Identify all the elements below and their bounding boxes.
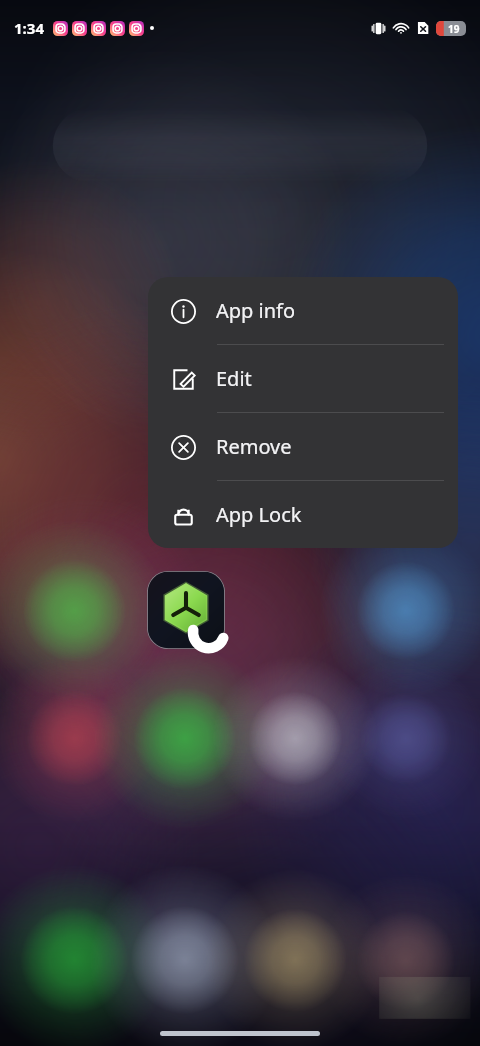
button[interactable]: App icon — [147, 571, 225, 649]
staticText: Edit — [216, 365, 252, 392]
staticText: App Lock — [216, 501, 302, 528]
staticText: 1:34 — [14, 18, 44, 38]
staticText: Remove — [216, 433, 292, 460]
button[interactable]: Remove — [148, 413, 458, 481]
button[interactable]: App info — [148, 277, 458, 345]
staticText: 19 — [448, 22, 460, 36]
button[interactable]: Edit — [148, 345, 458, 413]
button[interactable]: App Lock — [148, 481, 458, 548]
staticText: App info — [216, 297, 296, 324]
